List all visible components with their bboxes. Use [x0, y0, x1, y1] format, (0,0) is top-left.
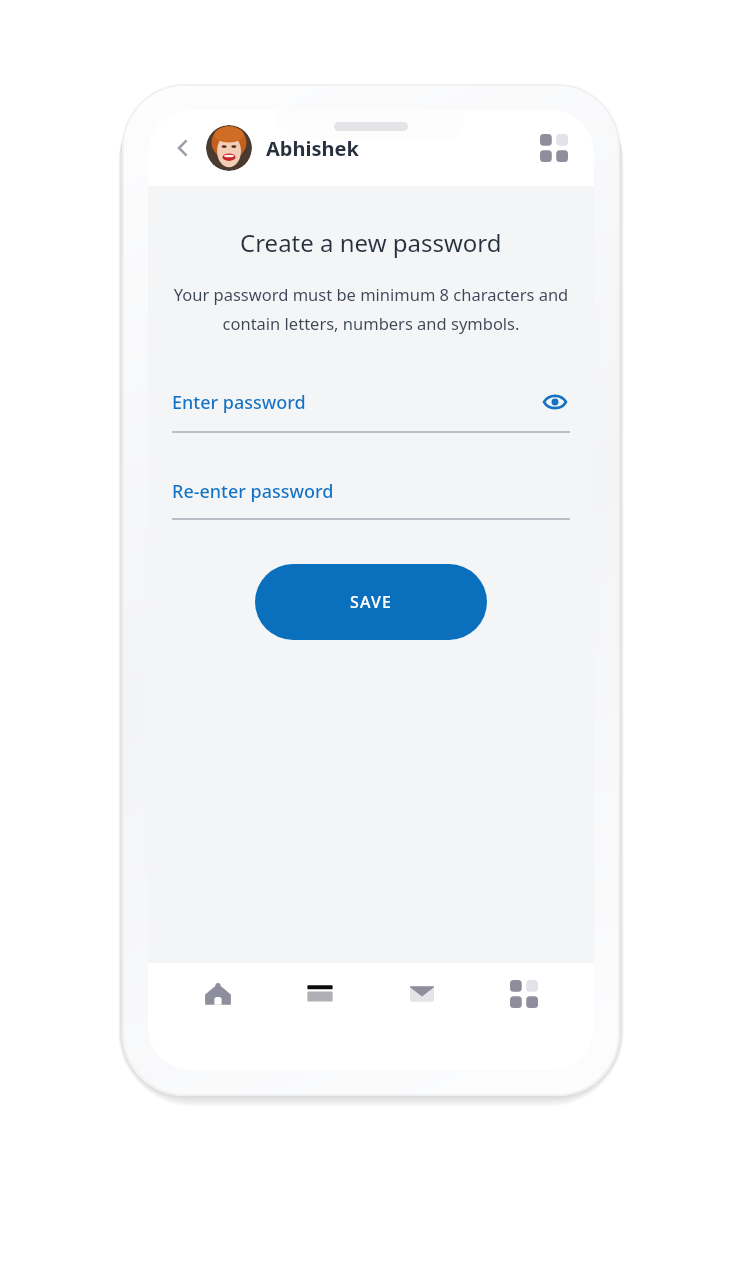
- staticText: Abhishek: [266, 135, 359, 162]
- button[interactable]: Back: [166, 131, 200, 165]
- staticText: Create a new password: [240, 226, 502, 259]
- button[interactable]: SAVE: [255, 564, 487, 640]
- button[interactable]: Enter password: [172, 387, 570, 433]
- button[interactable]: Re-enter password: [172, 479, 570, 520]
- button[interactable]: Apps: [482, 965, 566, 1023]
- button[interactable]: Cards: [278, 965, 362, 1023]
- staticText: Enter password: [172, 390, 306, 415]
- staticText: Your password must be minimum 8 characte…: [170, 283, 572, 335]
- staticText: Re-enter password: [172, 479, 334, 504]
- button[interactable]: Messages: [380, 965, 464, 1023]
- button[interactable]: Show password: [540, 387, 570, 417]
- button[interactable]: Home: [176, 965, 260, 1023]
- button[interactable]: Profile photo: [206, 125, 252, 171]
- button[interactable]: Apps: [534, 128, 574, 168]
- staticText: SAVE: [350, 591, 393, 613]
